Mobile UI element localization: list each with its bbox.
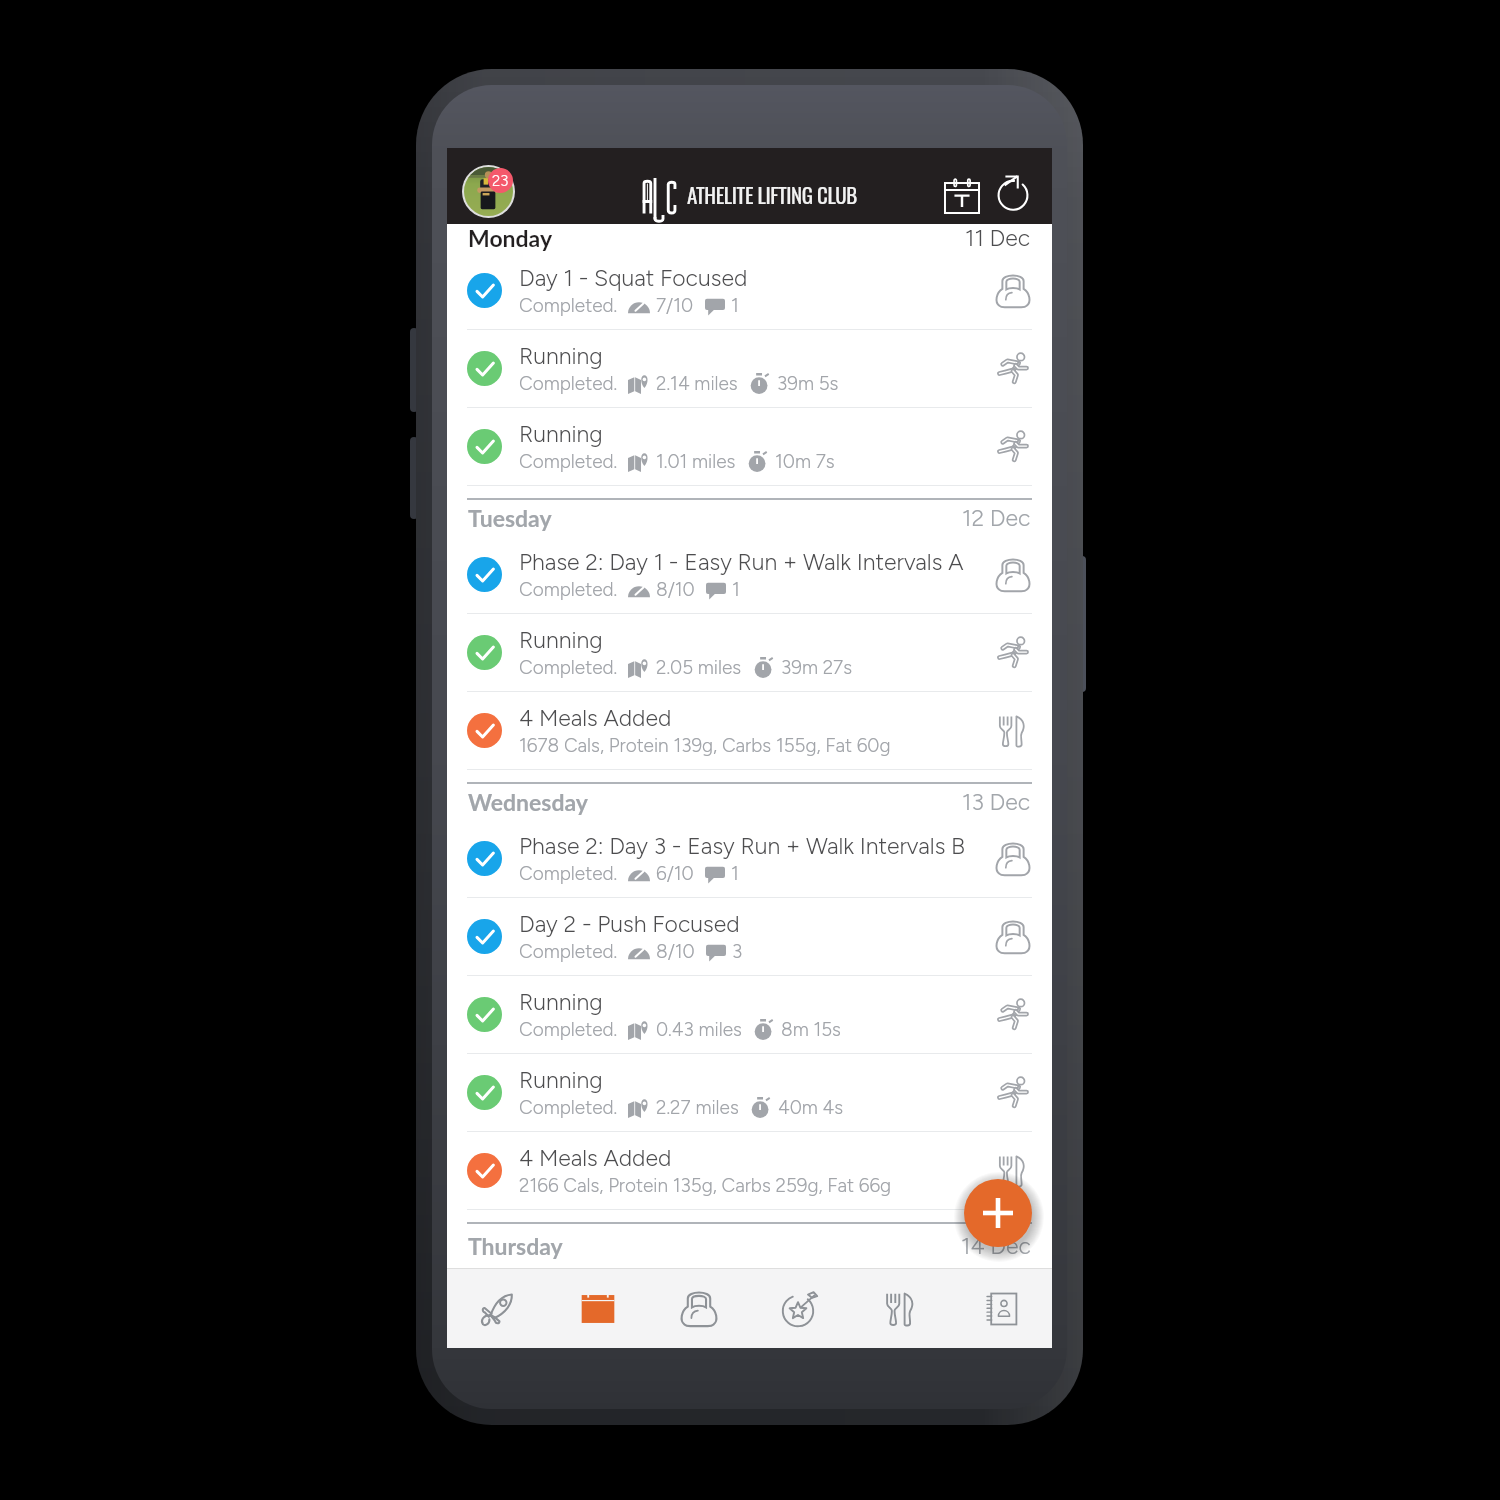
- button[interactable]: Running: [447, 330, 1052, 408]
- staticText: 3: [732, 940, 743, 963]
- staticText: Phase 2: Day 3 - Easy Run + Walk Interva…: [519, 832, 966, 860]
- staticText: 4 Meals Added: [519, 704, 672, 732]
- staticText: Running: [519, 1066, 603, 1094]
- staticText: Running: [519, 420, 603, 448]
- staticText: Completed.: [519, 372, 618, 395]
- staticText: 39m 5s: [777, 372, 839, 395]
- staticText: Monday: [468, 224, 553, 252]
- staticText: Completed.: [519, 294, 618, 317]
- staticText: Thursday: [468, 1232, 563, 1260]
- staticText: 1.01 miles: [656, 450, 736, 473]
- staticText: 8/10: [656, 578, 695, 601]
- staticText: 2166 Cals, Protein 135g, Carbs 259g, Fat…: [519, 1174, 892, 1197]
- button[interactable]: Today: [938, 171, 986, 219]
- staticText: 39m 27s: [781, 656, 853, 679]
- staticText: 1: [731, 294, 739, 317]
- staticText: 4 Meals Added: [519, 1144, 672, 1172]
- staticText: 1: [732, 578, 740, 601]
- staticText: Running: [519, 342, 603, 370]
- staticText: 2.27 miles: [656, 1096, 739, 1119]
- staticText: Phase 2: Day 1 - Easy Run + Walk Interva…: [519, 548, 964, 576]
- button[interactable]: Running: [447, 614, 1052, 692]
- staticText: 13 Dec: [962, 788, 1031, 816]
- staticText: Running: [519, 988, 603, 1016]
- staticText: 2.05 miles: [656, 656, 742, 679]
- staticText: Day 1 - Squat Focused: [519, 264, 748, 292]
- button[interactable]: Day 2 - Push Focused: [447, 898, 1052, 976]
- staticText: Completed.: [519, 1018, 618, 1041]
- staticText: 0.43 miles: [656, 1018, 742, 1041]
- button[interactable]: Nutrition: [850, 1269, 951, 1348]
- staticText: 7/10: [656, 294, 694, 317]
- staticText: Completed.: [519, 940, 618, 963]
- staticText: 8m 15s: [781, 1018, 841, 1041]
- staticText: Tuesday: [468, 504, 552, 532]
- button[interactable]: Phase 2: Day 3 - Easy Run + Walk Interva…: [447, 820, 1052, 898]
- staticText: 10m 7s: [775, 450, 835, 473]
- button[interactable]: Day 1 - Squat Focused: [447, 252, 1052, 330]
- staticText: 11 Dec: [965, 224, 1031, 252]
- staticText: 2.14 miles: [656, 372, 738, 395]
- button[interactable]: Running: [447, 976, 1052, 1054]
- button[interactable]: 4 Meals Added: [447, 1132, 1052, 1210]
- staticText: 12 Dec: [962, 504, 1031, 532]
- button[interactable]: 4 Meals Added: [447, 692, 1052, 770]
- staticText: 8/10: [656, 940, 695, 963]
- staticText: Completed.: [519, 656, 618, 679]
- staticText: Completed.: [519, 862, 618, 885]
- button[interactable]: Refresh: [989, 169, 1037, 217]
- button[interactable]: Phase 2: Day 1 - Easy Run + Walk Interva…: [447, 536, 1052, 614]
- staticText: 1678 Cals, Protein 139g, Carbs 155g, Fat…: [519, 734, 891, 757]
- staticText: Running: [519, 626, 603, 654]
- button[interactable]: Running: [447, 1054, 1052, 1132]
- staticText: Completed.: [519, 578, 618, 601]
- button[interactable]: Add: [964, 1179, 1032, 1247]
- button[interactable]: Workouts: [648, 1269, 749, 1348]
- button[interactable]: Profile: [462, 165, 515, 218]
- staticText: Wednesday: [468, 788, 588, 816]
- button[interactable]: Achievements: [749, 1269, 850, 1348]
- button[interactable]: Calendar: [547, 1269, 648, 1348]
- button[interactable]: Explore: [447, 1269, 547, 1348]
- button[interactable]: Running: [447, 408, 1052, 486]
- staticText: 1: [731, 862, 739, 885]
- staticText: Day 2 - Push Focused: [519, 910, 740, 938]
- staticText: ATHELITE LIFTING CLUB: [687, 179, 857, 210]
- staticText: Completed.: [519, 450, 618, 473]
- staticText: Completed.: [519, 1096, 618, 1119]
- staticText: 23: [492, 172, 509, 190]
- staticText: 6/10: [656, 862, 694, 885]
- button[interactable]: Contacts: [951, 1269, 1052, 1348]
- staticText: 14 Dec: [961, 1232, 1031, 1260]
- staticText: 40m 4s: [778, 1096, 844, 1119]
